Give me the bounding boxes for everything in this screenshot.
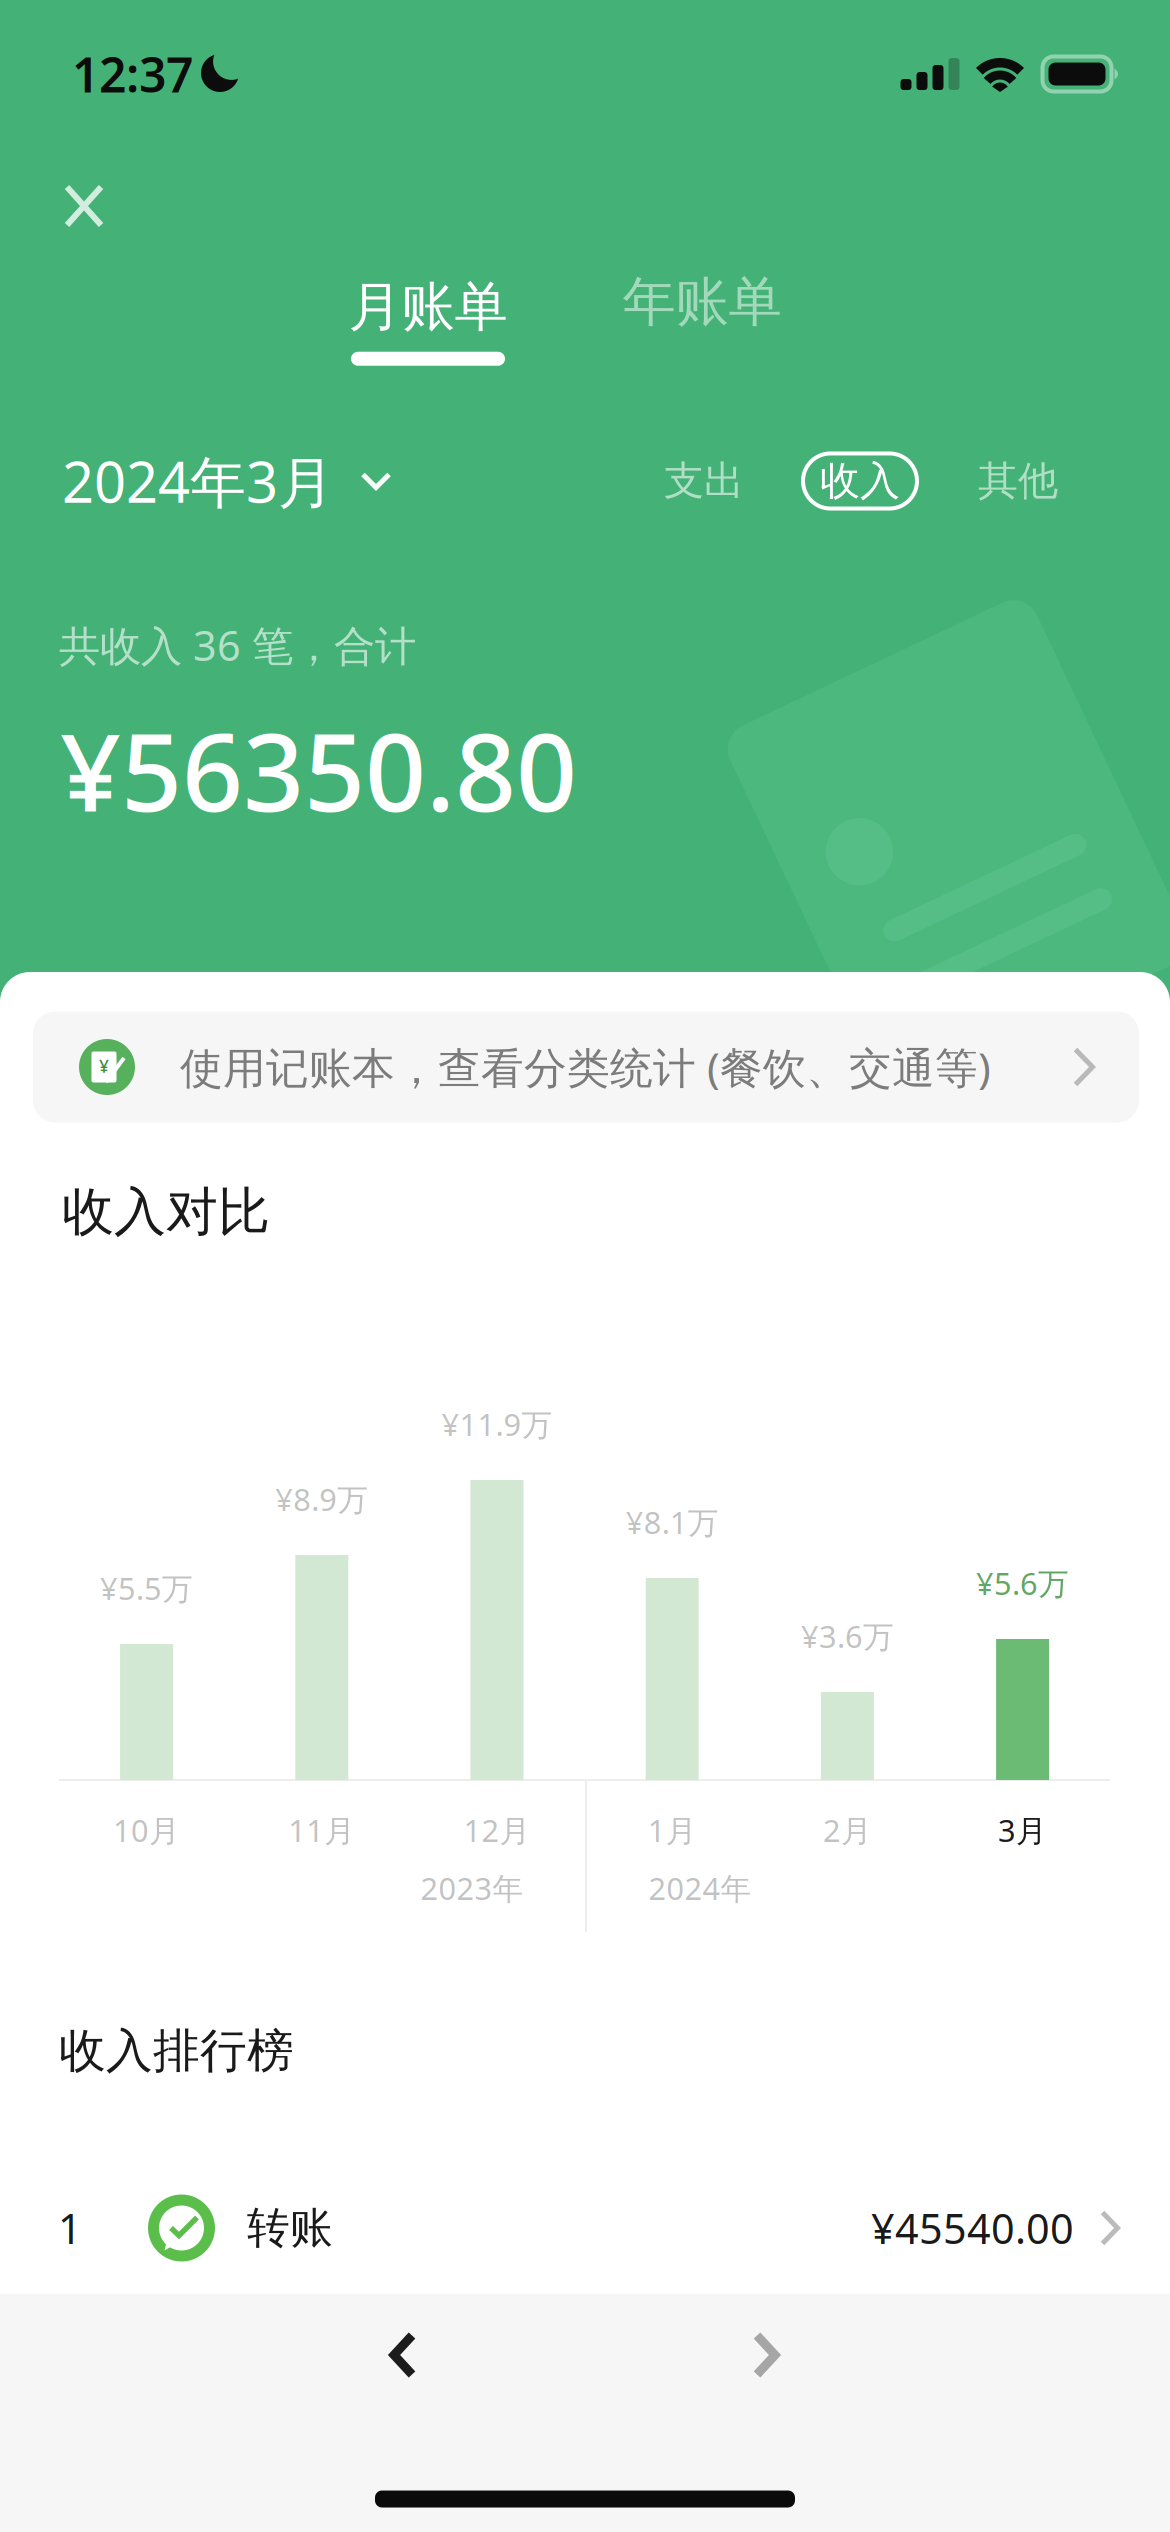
staticText: ¥3.6万 xyxy=(801,1616,894,1656)
button[interactable]: Close xyxy=(40,160,128,252)
staticText: ¥8.9万 xyxy=(275,1479,368,1519)
button[interactable]: 其他 xyxy=(956,440,1080,521)
staticText: 其他 xyxy=(978,456,1058,505)
staticText: 3月 xyxy=(998,1810,1047,1850)
button[interactable]: 月账单 xyxy=(326,264,529,376)
staticText: 1月 xyxy=(648,1810,697,1850)
staticText: 年账单 xyxy=(622,269,781,335)
staticText: ¥11.9万 xyxy=(441,1404,552,1444)
staticText: 2024年3月 xyxy=(62,444,334,518)
staticText: 11月 xyxy=(288,1810,355,1850)
staticText: ¥8.1万 xyxy=(626,1502,719,1542)
staticText: 支出 xyxy=(664,456,744,505)
button[interactable]: 2024年3月 xyxy=(48,428,406,534)
staticText: ¥56350.80 xyxy=(60,699,577,841)
button[interactable]: Previous month xyxy=(341,2283,464,2427)
staticText: 月账单 xyxy=(348,274,507,340)
staticText: 收入排行榜 xyxy=(59,2022,294,2080)
staticText: 使用记账本，查看分类统计 (餐饮、交通等) xyxy=(180,1039,991,1095)
staticText: ¥ xyxy=(99,1054,109,1077)
staticText: 收入 xyxy=(820,456,900,505)
button[interactable]: 收入 xyxy=(803,453,917,508)
staticText: 收入对比 xyxy=(62,1180,270,1244)
staticText: 2024年 xyxy=(648,1868,751,1908)
button[interactable]: 年账单 xyxy=(600,259,803,345)
staticText: ¥45540.00 xyxy=(871,2201,1074,2255)
staticText: 10月 xyxy=(113,1810,180,1850)
staticText: 2023年 xyxy=(420,1868,523,1908)
button[interactable]: ¥ xyxy=(33,1011,1139,1122)
staticText: 1 xyxy=(58,2201,82,2255)
button[interactable]: 1 xyxy=(0,2162,1170,2294)
staticText: 共收入 36 笔，合计 xyxy=(59,618,416,672)
staticText: 转账 xyxy=(247,2202,333,2254)
staticText: 12:37 xyxy=(72,42,193,106)
staticText: 2月 xyxy=(823,1810,872,1850)
staticText: 12月 xyxy=(463,1810,530,1850)
staticText: ¥5.5万 xyxy=(100,1568,193,1608)
staticText: ¥5.6万 xyxy=(976,1563,1069,1603)
button[interactable]: 支出 xyxy=(642,440,766,521)
button[interactable]: Next month xyxy=(704,2283,827,2427)
